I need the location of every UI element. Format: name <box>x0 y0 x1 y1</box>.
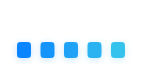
button[interactable]: Colour swatch 4 <box>87 42 101 58</box>
button[interactable]: Colour swatch 2 <box>40 42 54 58</box>
button[interactable]: Colour swatch 1 <box>17 42 31 58</box>
button[interactable]: Colour swatch 5 <box>111 42 125 58</box>
button[interactable]: Colour swatch 3 <box>64 42 78 58</box>
